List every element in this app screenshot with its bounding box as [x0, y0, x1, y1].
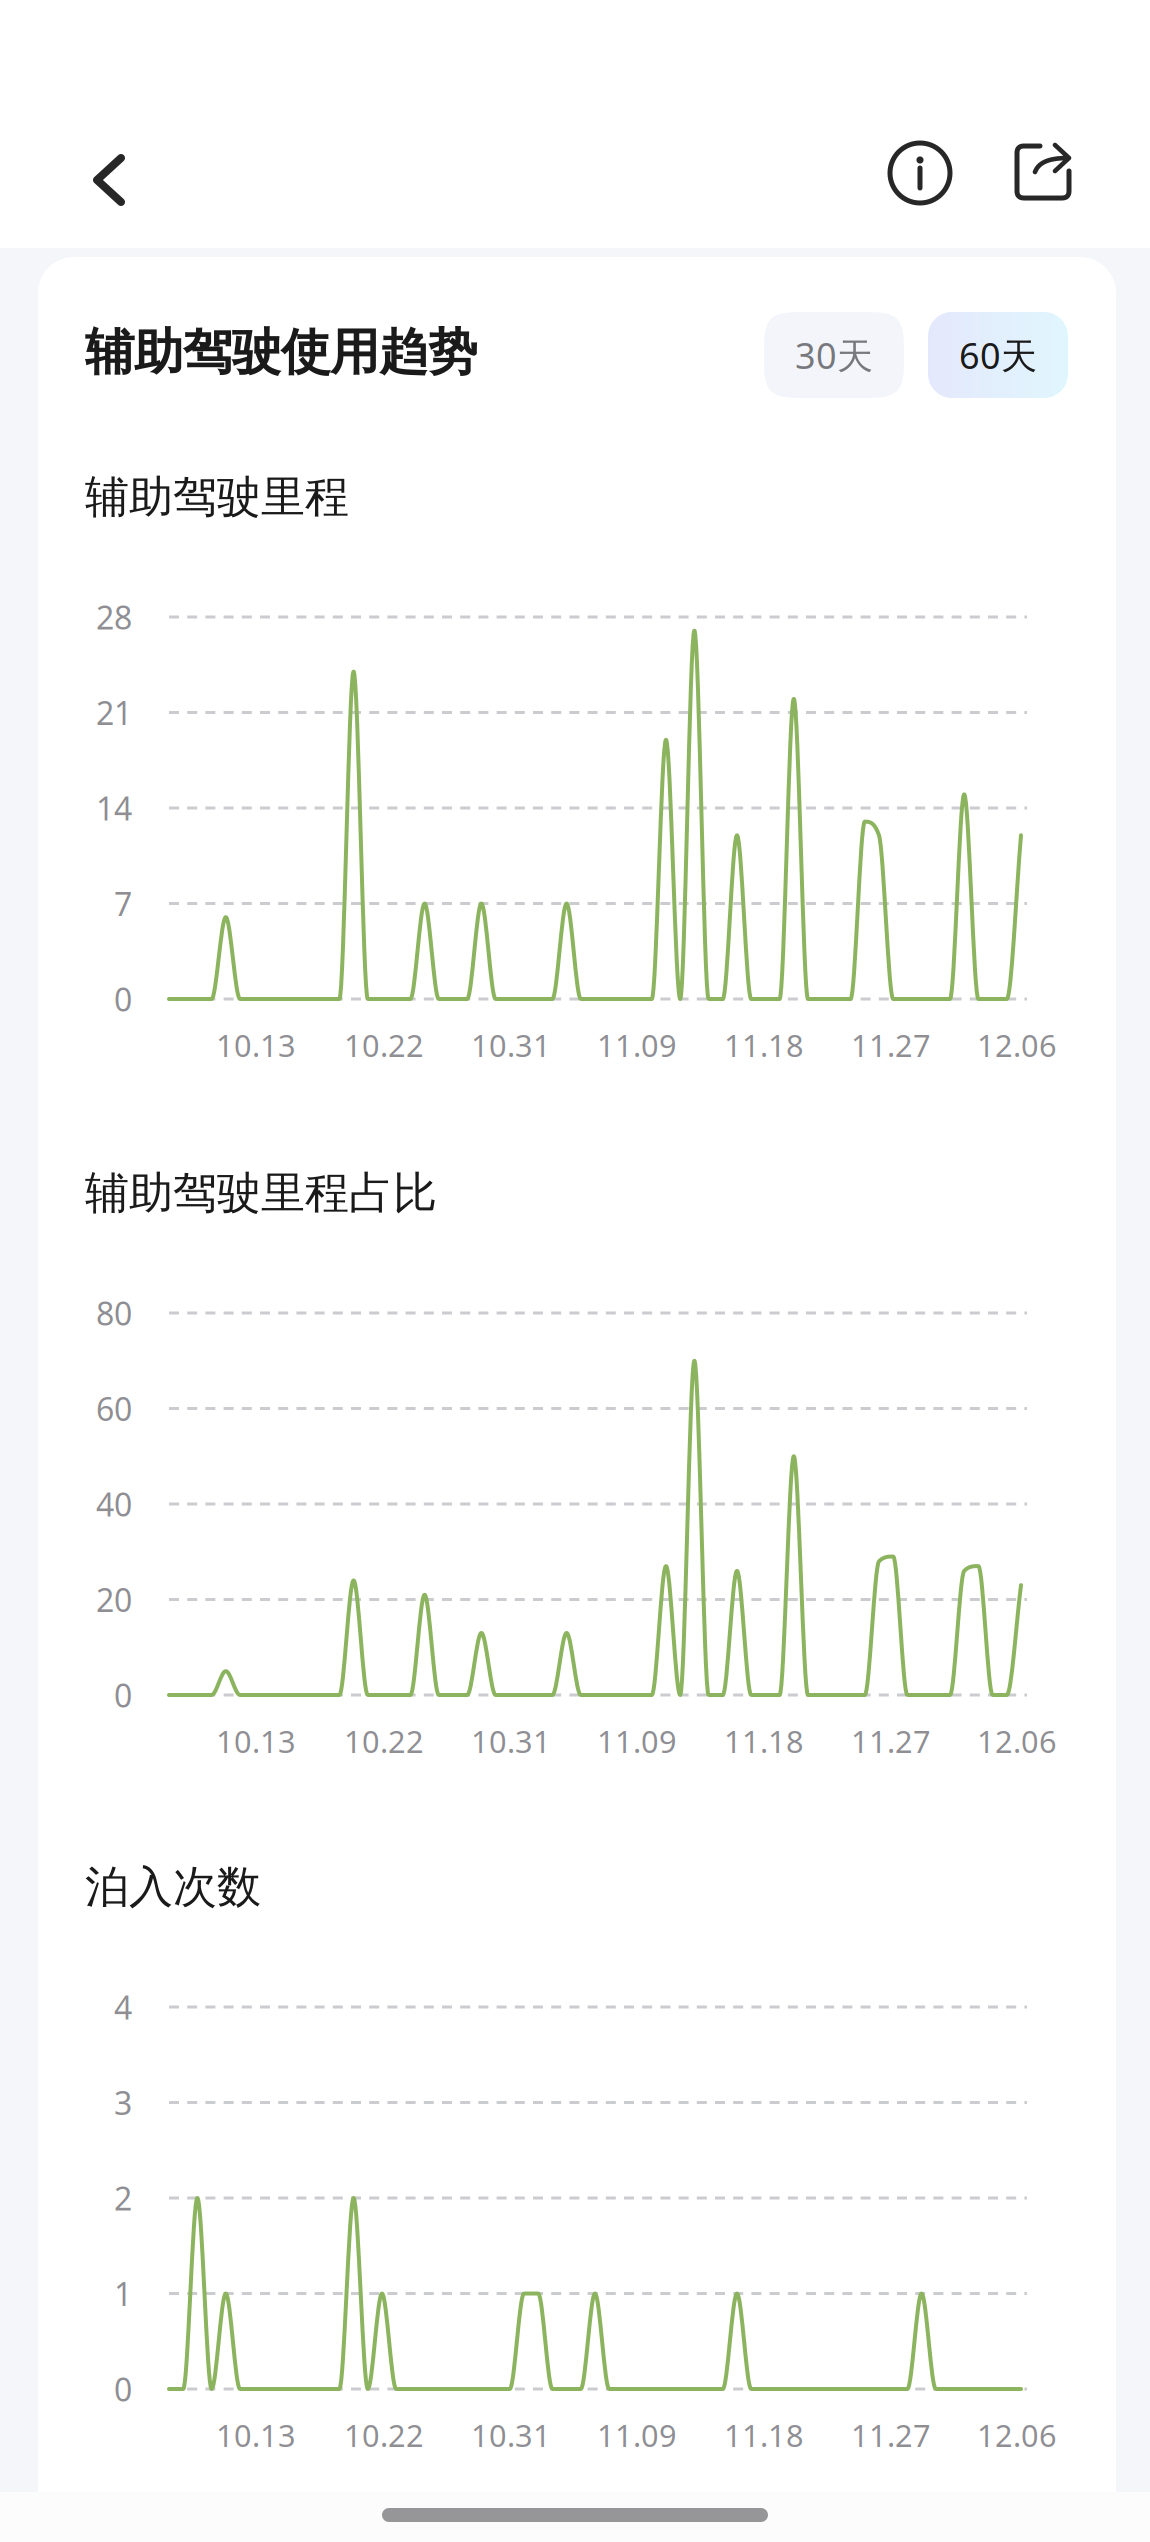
- staticText: 10.22: [344, 2415, 424, 2455]
- staticText: 11.27: [851, 1721, 931, 1761]
- staticText: 7: [114, 882, 132, 925]
- staticText: 11.18: [724, 2415, 804, 2455]
- staticText: 10.13: [216, 1721, 296, 1761]
- staticText: 40: [96, 1483, 132, 1525]
- staticText: 辅助驾驶里程占比: [85, 1166, 437, 1220]
- button[interactable]: Share: [995, 124, 1091, 220]
- staticText: 4: [114, 1986, 132, 2028]
- button[interactable]: Information: [872, 125, 968, 221]
- staticText: 0: [114, 978, 132, 1020]
- staticText: 21: [96, 691, 132, 734]
- staticText: 10.22: [344, 1025, 424, 1065]
- staticText: 泊入次数: [85, 1860, 261, 1914]
- staticText: 3: [114, 2081, 132, 2124]
- staticText: 12.06: [977, 1025, 1057, 1065]
- staticText: 30天: [795, 331, 873, 379]
- staticText: 10.31: [471, 2415, 551, 2455]
- staticText: 10.31: [471, 1721, 551, 1761]
- staticText: 11.18: [724, 1025, 804, 1065]
- staticText: 11.27: [851, 2415, 931, 2455]
- staticText: 10.13: [216, 1025, 296, 1065]
- staticText: 80: [96, 1292, 132, 1334]
- staticText: 11.18: [724, 1721, 804, 1761]
- staticText: 2: [114, 2177, 132, 2219]
- staticText: 20: [96, 1578, 132, 1621]
- staticText: 11.27: [851, 1025, 931, 1065]
- staticText: 0: [114, 1674, 132, 1716]
- staticText: 11.09: [597, 1025, 677, 1065]
- staticText: 12.06: [977, 1721, 1057, 1761]
- staticText: 0: [114, 2368, 132, 2410]
- staticText: 辅助驾驶里程: [85, 470, 349, 524]
- staticText: 10.22: [344, 1721, 424, 1761]
- staticText: 辅助驾驶使用趋势: [85, 322, 477, 383]
- staticText: 10.13: [216, 2415, 296, 2455]
- staticText: 14: [96, 787, 132, 829]
- staticText: 11.09: [597, 1721, 677, 1761]
- staticText: 60天: [959, 331, 1037, 379]
- staticText: 1: [114, 2272, 132, 2315]
- button[interactable]: 30天: [764, 312, 904, 398]
- staticText: 12.06: [977, 2415, 1057, 2455]
- staticText: 28: [96, 596, 132, 638]
- button[interactable]: 60天: [928, 312, 1068, 398]
- button[interactable]: Back: [55, 132, 163, 228]
- staticText: 10.31: [471, 1025, 551, 1065]
- staticText: 11.09: [597, 2415, 677, 2455]
- staticText: 60: [96, 1387, 132, 1430]
